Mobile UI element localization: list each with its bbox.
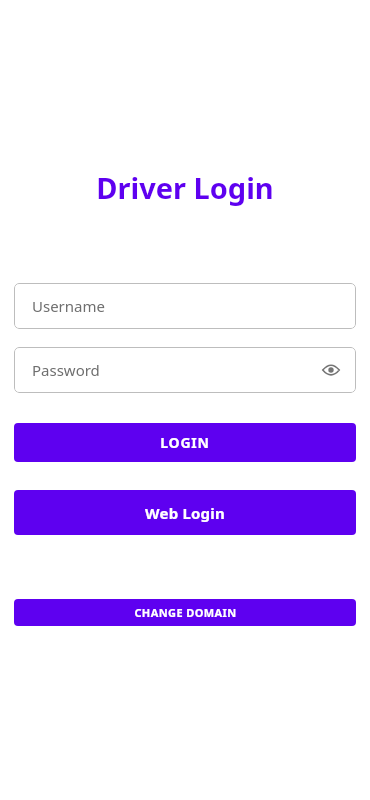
button[interactable]: LOGIN	[14, 423, 356, 462]
button[interactable]: Toggle password visibility	[320, 359, 342, 381]
button[interactable]: CHANGE DOMAIN	[14, 599, 356, 626]
staticText: Password	[32, 360, 320, 380]
button[interactable]: Username	[14, 283, 356, 329]
button[interactable]: Web Login	[14, 490, 356, 535]
staticText: Driver Login	[96, 168, 274, 207]
staticText: Web Login	[145, 503, 225, 523]
staticText: Username	[32, 296, 342, 316]
staticText: LOGIN	[160, 433, 210, 452]
staticText: CHANGE DOMAIN	[134, 605, 237, 620]
button[interactable]: Password	[14, 347, 356, 393]
